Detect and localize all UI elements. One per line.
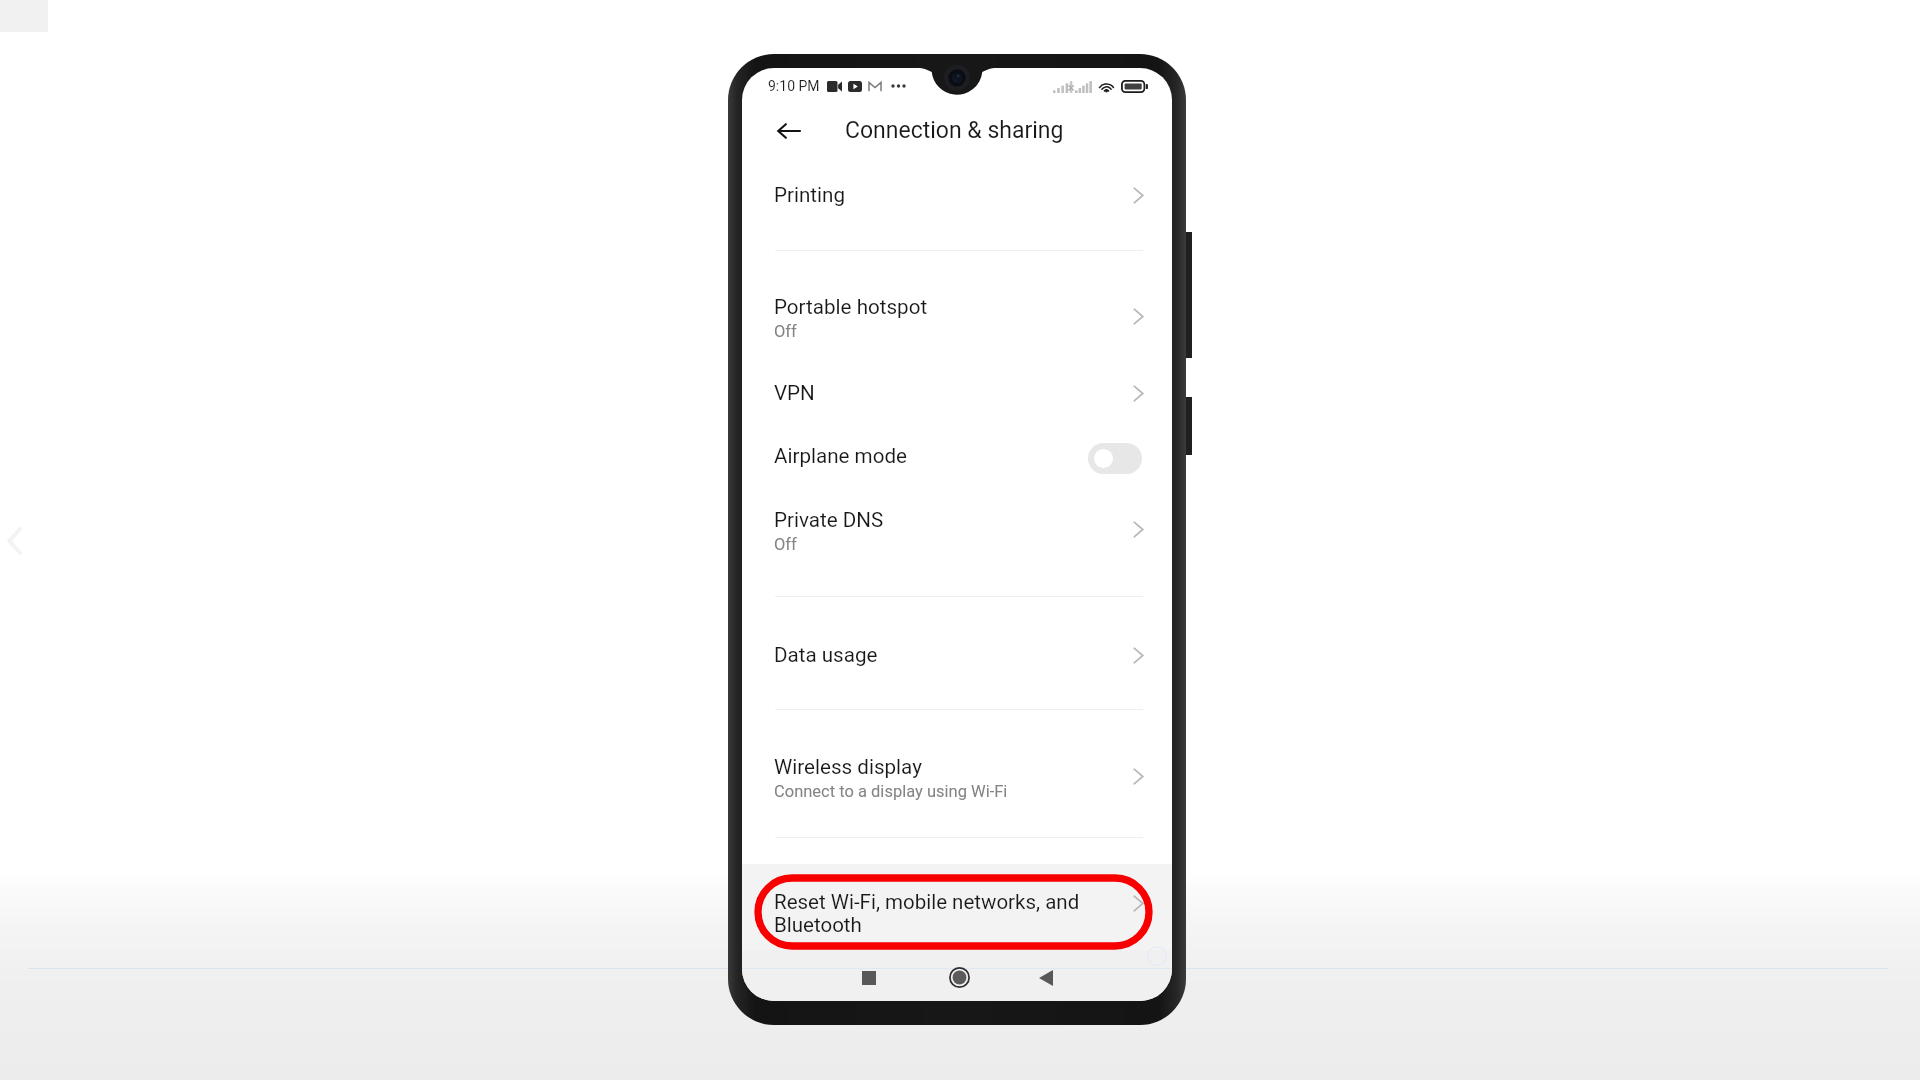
button[interactable]: Data usage bbox=[742, 631, 1172, 679]
button[interactable]: Private DNS bbox=[742, 498, 1172, 560]
staticText: Off bbox=[774, 322, 797, 341]
button[interactable]: Wireless display bbox=[742, 745, 1172, 807]
button[interactable]: Back bbox=[767, 109, 811, 153]
button[interactable]: Reset Wi-Fi, mobile networks, and Blueto… bbox=[742, 864, 1172, 950]
staticText: Connection & sharing bbox=[845, 117, 1064, 144]
staticText: Private DNS bbox=[774, 508, 884, 532]
staticText: Printing bbox=[774, 183, 846, 207]
staticText: 9:10 PM bbox=[768, 78, 820, 94]
button[interactable]: VPN bbox=[742, 369, 1172, 417]
staticText: Connect to a display using Wi-Fi bbox=[774, 782, 1008, 801]
button[interactable]: Home bbox=[939, 957, 979, 997]
button[interactable]: Recents bbox=[849, 958, 889, 998]
staticText: VPN bbox=[774, 381, 815, 405]
staticText: Wireless display bbox=[774, 755, 922, 779]
button[interactable]: Airplane mode bbox=[742, 432, 1172, 480]
staticText: Airplane mode bbox=[774, 444, 1090, 468]
button[interactable]: Back bbox=[1026, 958, 1066, 998]
button[interactable]: Portable hotspot bbox=[742, 285, 1172, 347]
button[interactable]: Printing bbox=[742, 171, 1172, 219]
staticText: Off bbox=[774, 535, 797, 554]
staticText: Portable hotspot bbox=[774, 295, 928, 319]
staticText: Data usage bbox=[774, 643, 878, 667]
staticText: Reset Wi-Fi, mobile networks, and Blueto… bbox=[774, 890, 1133, 937]
